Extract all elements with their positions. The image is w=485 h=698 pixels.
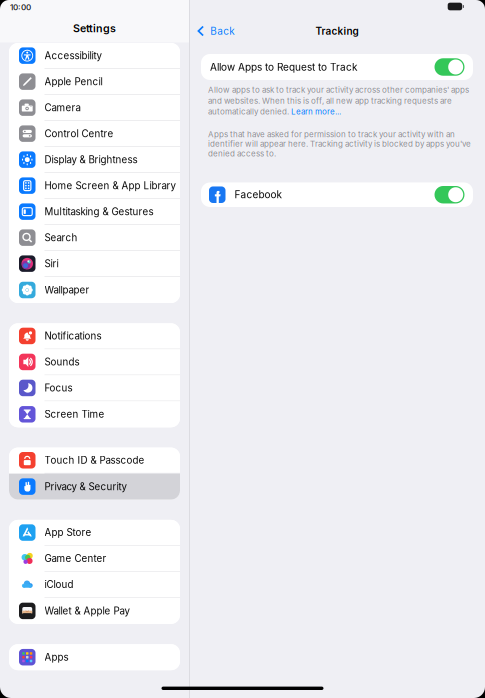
button[interactable]: Multitasking & Gestures [9, 199, 180, 225]
staticText: Touch ID & Passcode [44, 454, 144, 466]
staticText: Accessibility [44, 50, 101, 62]
staticText: 10:00 [10, 2, 31, 12]
button[interactable]: Toggle [434, 58, 464, 76]
staticText: Wallet & Apple Pay [44, 605, 129, 617]
staticText: Display & Brightness [44, 154, 137, 166]
staticText: Multitasking & Gestures [44, 206, 153, 218]
button[interactable]: Touch ID & Passcode [9, 448, 180, 474]
button[interactable]: Accessibility [9, 43, 180, 69]
button[interactable]: iCloud [9, 572, 180, 598]
staticText: Apps [44, 651, 68, 663]
staticText: Camera [44, 102, 80, 114]
staticText: Screen Time [44, 408, 104, 420]
staticText: Settings [73, 22, 116, 35]
button[interactable]: Focus [9, 375, 180, 401]
staticText: Game Center [44, 553, 106, 564]
button[interactable]: Wallet & Apple Pay [9, 598, 180, 624]
staticText: Control Centre [44, 128, 113, 140]
button[interactable]: Learn more... [291, 107, 341, 116]
staticText: iCloud [44, 579, 73, 590]
button[interactable]: Camera [9, 95, 180, 121]
button[interactable]: Control Centre [9, 121, 180, 147]
button[interactable]: Game Center [9, 546, 180, 572]
staticText: Notifications [44, 330, 101, 342]
button[interactable]: App Store [9, 520, 180, 546]
button[interactable]: Apps [9, 644, 180, 670]
staticText: App Store [44, 527, 91, 538]
button[interactable]: Sounds [9, 349, 180, 375]
staticText: Sounds [44, 356, 79, 368]
staticText: Allow Apps to Request to Track [210, 61, 357, 73]
button[interactable]: Home Screen & App Library [9, 173, 180, 199]
button[interactable]: Back [197, 20, 240, 42]
button[interactable]: Wallpaper [9, 277, 180, 303]
staticText: Back [210, 25, 234, 37]
staticText: Facebook [234, 189, 281, 201]
staticText: and websites. When this is off, all new … [208, 96, 452, 106]
staticText: Tracking [315, 25, 358, 37]
staticText: Allow apps to ask to track your activity… [208, 85, 469, 95]
staticText: automatically denied. [208, 107, 291, 116]
staticText: Wallpaper [44, 284, 89, 296]
button[interactable]: Screen Time [9, 401, 180, 427]
button[interactable]: Search [9, 225, 180, 251]
staticText: Search [44, 232, 77, 244]
staticText: Siri [44, 258, 58, 270]
button[interactable]: Toggle [434, 186, 464, 203]
button[interactable]: Privacy & Security [9, 474, 180, 500]
button[interactable]: Apple Pencil [9, 69, 180, 95]
staticText: Focus [44, 382, 72, 394]
staticText: Learn more... [291, 107, 341, 116]
staticText: Apple Pencil [44, 76, 102, 88]
button[interactable]: Siri [9, 251, 180, 277]
staticText: Home Screen & App Library [44, 180, 175, 192]
button[interactable]: Display & Brightness [9, 147, 180, 173]
staticText: Privacy & Security [44, 481, 126, 492]
staticText: Apps that have asked for permission to t… [208, 129, 471, 158]
button[interactable]: Notifications [9, 323, 180, 349]
